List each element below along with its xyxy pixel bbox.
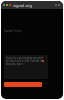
button[interactable]: Signal is a messaging app with privacy b…	[4, 55, 48, 79]
staticText: signal.org	[13, 3, 33, 8]
staticText: Signal is a messaging app with privacy b…	[6, 56, 48, 65]
button[interactable]	[4, 82, 42, 87]
staticText: Speak Freely	[4, 29, 22, 33]
